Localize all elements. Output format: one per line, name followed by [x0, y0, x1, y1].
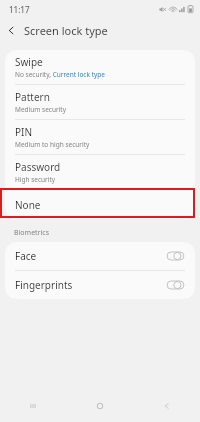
button[interactable]: Back: [0, 19, 22, 41]
staticText: Biometrics: [14, 228, 50, 238]
staticText: High security: [15, 175, 56, 184]
staticText: Medium security: [15, 105, 66, 114]
button[interactable]: Swipe: [5, 50, 195, 84]
button[interactable]: Pattern: [5, 85, 195, 119]
button[interactable]: Home: [66, 390, 133, 422]
button[interactable]: Password: [5, 155, 195, 189]
staticText: Swipe: [15, 55, 43, 69]
staticText: No security, Current lock type: [15, 70, 105, 79]
staticText: Screen lock type: [24, 23, 108, 38]
button[interactable]: PIN: [5, 120, 195, 154]
staticText: Medium to high security: [15, 140, 90, 149]
button[interactable]: None: [5, 190, 195, 219]
staticText: Face: [15, 249, 37, 263]
staticText: 11:17: [9, 4, 30, 15]
staticText: Password: [15, 160, 61, 174]
button[interactable]: Face: [5, 242, 195, 270]
button[interactable]: Fingerprints: [5, 271, 195, 299]
staticText: Fingerprints: [15, 278, 73, 292]
staticText: None: [15, 198, 41, 212]
staticText: Pattern: [15, 90, 50, 104]
staticText: PIN: [15, 125, 33, 139]
